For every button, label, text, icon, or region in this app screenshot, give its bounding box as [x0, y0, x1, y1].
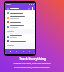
button[interactable] — [6, 24, 34, 29]
staticText: in one simple place, synced everywhere. — [14, 66, 50, 69]
button[interactable]: Tab 1 — [9, 50, 12, 53]
button[interactable]: Search — [27, 7, 30, 10]
staticText: Track Everything — [19, 57, 46, 61]
button[interactable]: Menu — [6, 7, 9, 10]
button[interactable] — [6, 11, 34, 15]
button[interactable]: Tab 2 — [15, 50, 18, 53]
button[interactable] — [6, 34, 34, 39]
button[interactable] — [6, 20, 34, 24]
button[interactable]: Tab 3 — [22, 50, 25, 53]
button[interactable]: Tab 4 — [28, 50, 31, 53]
button[interactable] — [6, 15, 34, 20]
button[interactable] — [6, 39, 34, 43]
staticText: Organise your tasks, notes and reminders — [13, 62, 51, 65]
button[interactable]: More options — [31, 7, 34, 10]
